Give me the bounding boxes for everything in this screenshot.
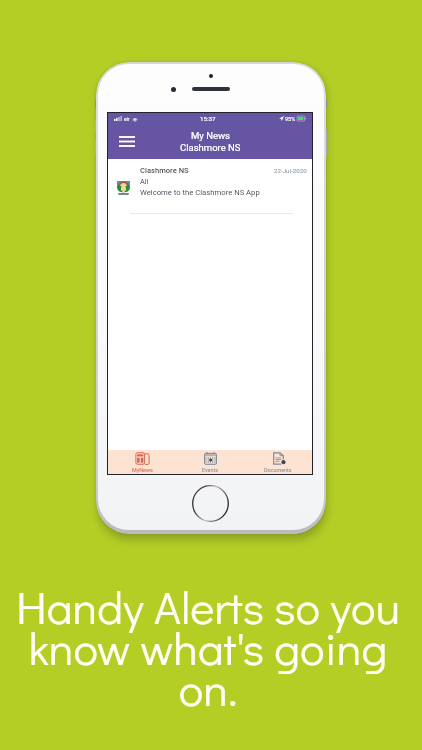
staticText: Documents [264, 467, 292, 473]
staticText: My News [191, 130, 231, 141]
button[interactable]: Open navigation menu [108, 124, 143, 159]
staticText: 22-Jul-2020 [274, 167, 307, 174]
staticText: eir [124, 116, 130, 122]
staticText: Clashmore NS [180, 142, 241, 153]
staticText: All [140, 177, 149, 186]
staticText: Welcome to the Clashmore NS App [140, 188, 260, 197]
staticText: MyNews [132, 467, 153, 473]
staticText: Clashmore NS [140, 166, 189, 175]
staticText: 15:37 [200, 115, 216, 122]
button[interactable]: Clashmore NS [108, 113, 312, 214]
staticText: Events [202, 467, 218, 473]
button[interactable]: MyNews [108, 450, 176, 474]
staticText: Handy Alerts so you know what's going on… [7, 576, 409, 718]
button[interactable]: Events [176, 450, 244, 474]
button[interactable]: Documents [244, 450, 312, 474]
staticText: 95% [285, 116, 296, 122]
